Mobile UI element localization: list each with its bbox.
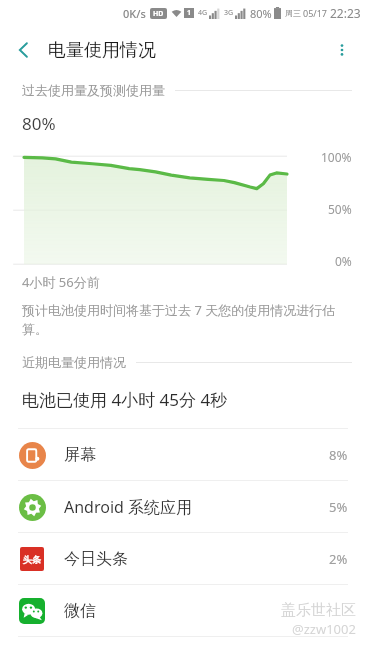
staticText: 8% xyxy=(329,446,348,464)
staticText: 2% xyxy=(329,550,348,568)
staticText: 4G xyxy=(198,8,208,18)
staticText: 3G xyxy=(224,8,234,18)
button[interactable]: Back xyxy=(0,26,48,74)
button[interactable]: 微信 xyxy=(0,585,366,636)
staticText: 盖乐世社区 xyxy=(281,601,356,620)
staticText: 近期电量使用情况 xyxy=(22,354,126,370)
staticText: 5% xyxy=(329,498,348,516)
staticText: 电量使用情况 xyxy=(48,39,156,62)
staticText: HD xyxy=(153,9,164,19)
staticText: 周三 xyxy=(285,8,301,18)
staticText: 0% xyxy=(335,253,352,269)
button[interactable]: 屏幕 xyxy=(0,429,366,480)
staticText: 50% xyxy=(328,201,352,217)
button[interactable]: More options xyxy=(318,26,366,74)
staticText: 微信 xyxy=(64,601,96,621)
staticText: 80% xyxy=(22,112,56,135)
staticText: @zzw1002 xyxy=(292,620,356,638)
staticText: 1 xyxy=(187,8,192,18)
staticText: 0K/s xyxy=(123,6,146,21)
staticText: 预计电池使用时间将基于过去 7 天您的使用情况进行估算。 xyxy=(22,301,348,338)
button[interactable]: Android 系统应用 xyxy=(0,481,366,532)
staticText: 100% xyxy=(321,149,352,165)
button[interactable]: 头条 xyxy=(0,533,366,584)
staticText: 4小时 56分前 xyxy=(22,273,100,291)
staticText: 过去使用量及预测使用量 xyxy=(22,82,165,98)
staticText: 22:23 xyxy=(330,5,361,21)
staticText: 今日头条 xyxy=(64,549,128,569)
staticText: 电池已使用 4小时 45分 4秒 xyxy=(22,388,228,411)
staticText: Android 系统应用 xyxy=(64,496,193,518)
staticText: 头条 xyxy=(23,554,41,565)
staticText: 05/17 xyxy=(303,7,327,19)
staticText: 80% xyxy=(250,6,272,21)
staticText: 屏幕 xyxy=(64,445,96,465)
